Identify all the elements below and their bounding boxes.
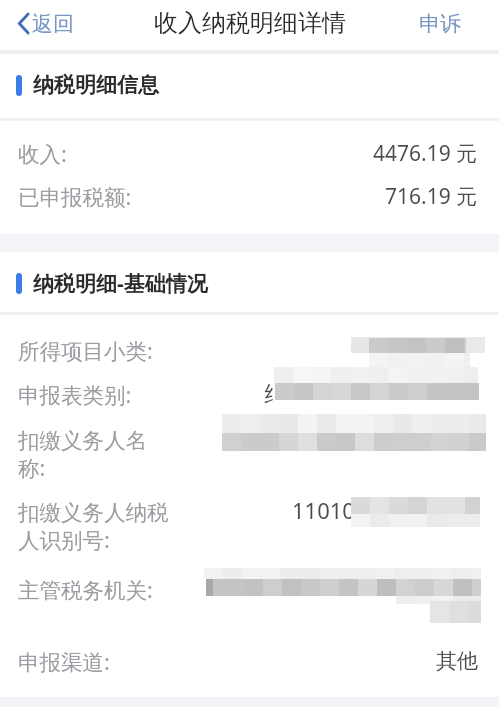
- staticText: 人识别号:: [18, 525, 110, 554]
- button[interactable]: 返回: [14, 0, 78, 48]
- staticText: 主管税务机关:: [18, 575, 153, 604]
- staticText: 扣缴义务人名: [18, 427, 147, 454]
- staticText: 4476.19 元: [373, 139, 478, 168]
- button[interactable]: 纳税明细信息: [0, 54, 499, 116]
- staticText: 返回: [32, 11, 74, 37]
- button[interactable]: 纳税明细-基础情况: [0, 252, 499, 314]
- staticText: 716.19 元: [385, 182, 478, 211]
- button[interactable]: 收入:: [0, 131, 499, 175]
- staticText: 纟: [263, 381, 284, 407]
- staticText: 称:: [18, 453, 46, 482]
- staticText: 申报渠道:: [18, 647, 110, 676]
- button[interactable]: 申报渠道:: [0, 639, 499, 683]
- staticText: 申诉: [419, 11, 461, 37]
- staticText: 收入:: [18, 139, 67, 168]
- button[interactable]: 申诉: [403, 0, 499, 50]
- staticText: 纳税明细-基础情况: [33, 269, 208, 298]
- staticText: 收入纳税明细详情: [154, 8, 346, 38]
- staticText: 所得项目小类:: [18, 336, 153, 365]
- staticText: 已申报税额:: [18, 182, 132, 211]
- staticText: 申报表类别:: [18, 380, 132, 409]
- button[interactable]: 已申报税额:: [0, 174, 499, 218]
- staticText: 其他: [436, 648, 478, 674]
- staticText: 11010: [292, 495, 355, 525]
- staticText: 纳税明细信息: [33, 72, 159, 98]
- staticText: 扣缴义务人纳税: [18, 499, 169, 526]
